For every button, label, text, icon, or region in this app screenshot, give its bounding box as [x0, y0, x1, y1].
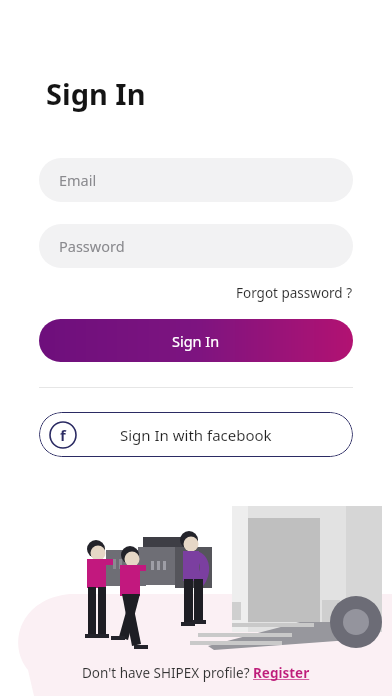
- button[interactable]: Sign In: [39, 319, 353, 362]
- staticText: Sign In with facebook: [120, 425, 272, 445]
- staticText: Sign In: [172, 331, 220, 351]
- staticText: Password: [59, 236, 125, 256]
- button[interactable]: Forgot password ?: [232, 280, 357, 306]
- staticText: Email: [59, 170, 97, 190]
- staticText: Sign In: [46, 74, 146, 113]
- button[interactable]: Sign In with facebook: [39, 412, 353, 457]
- button[interactable]: Password: [39, 224, 353, 268]
- other: Facebook: [49, 421, 77, 449]
- staticText: f: [60, 425, 66, 445]
- staticText: Don't have SHIPEX profile? Register: [82, 664, 310, 682]
- button[interactable]: Don't have SHIPEX profile? Register: [82, 664, 310, 682]
- staticText: Forgot password ?: [236, 284, 353, 302]
- button[interactable]: Email: [39, 158, 353, 202]
